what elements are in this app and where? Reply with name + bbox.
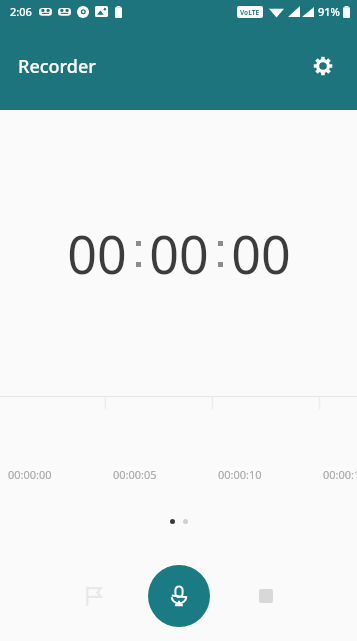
staticText: 00:00:15 [323, 467, 357, 482]
button[interactable]: Record [148, 565, 210, 627]
button[interactable]: Add marker [70, 573, 116, 619]
staticText: 91% [318, 4, 340, 19]
button[interactable]: Stop [243, 573, 289, 619]
staticText: VoLTE [240, 8, 260, 17]
staticText: 2:06 [10, 4, 32, 19]
staticText: Recorder [18, 54, 96, 79]
staticText: 00 [67, 218, 127, 289]
staticText: 00 [231, 218, 291, 289]
button[interactable]: Settings [301, 44, 345, 88]
staticText: 00 [149, 218, 209, 289]
staticText: 00:00:00 [8, 467, 52, 482]
staticText: 00:00:05 [113, 467, 157, 482]
staticText: 00:00:10 [218, 467, 262, 482]
